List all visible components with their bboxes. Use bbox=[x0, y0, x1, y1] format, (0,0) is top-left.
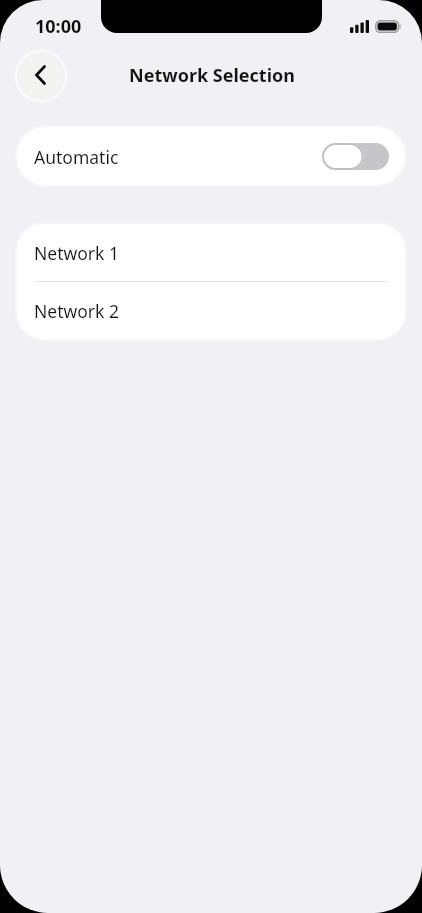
staticText: Network 1 bbox=[34, 241, 119, 265]
staticText: Network Selection bbox=[129, 63, 295, 88]
button[interactable]: Network 1 bbox=[17, 224, 405, 281]
button[interactable]: Automatic bbox=[17, 127, 405, 185]
staticText: Automatic bbox=[34, 145, 119, 169]
button[interactable]: Automatic toggle bbox=[322, 143, 389, 170]
button[interactable]: Back bbox=[17, 52, 65, 100]
button[interactable]: Network 2 bbox=[17, 282, 405, 339]
staticText: Network 2 bbox=[34, 299, 119, 323]
staticText: 10:00 bbox=[35, 14, 82, 39]
